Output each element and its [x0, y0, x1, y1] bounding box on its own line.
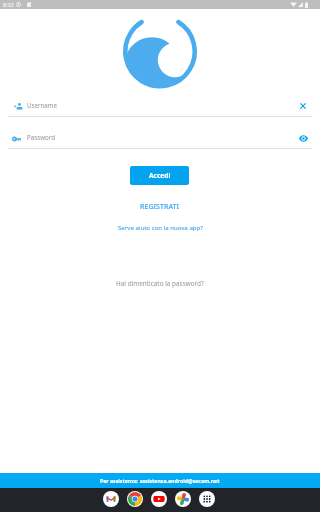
button[interactable]: Show password	[296, 131, 310, 145]
staticText: Per assistenza: assistenza.android@secam…	[100, 477, 220, 484]
button[interactable]: Per assistenza: assistenza.android@secam…	[0, 473, 320, 488]
button[interactable]: Accedi	[130, 166, 189, 185]
button[interactable]: Chrome	[127, 491, 143, 507]
staticText: Accedi	[149, 171, 171, 180]
staticText: REGISTRATI	[140, 201, 180, 211]
button[interactable]: YouTube	[151, 491, 167, 507]
button[interactable]: Clear	[296, 99, 310, 113]
staticText: Hai dimenticato la password?	[116, 279, 204, 288]
staticText: Serve aiuto con la nuova app?	[118, 223, 203, 231]
button[interactable]: Serve aiuto con la nuova app?	[0, 221, 320, 232]
button[interactable]: All apps	[199, 491, 215, 507]
staticText: 8:32	[3, 1, 14, 8]
button[interactable]: REGISTRATI	[0, 200, 320, 211]
staticText: Password	[27, 133, 55, 141]
staticText: Username	[27, 101, 58, 109]
button[interactable]: Photos	[175, 491, 191, 507]
button[interactable]: Hai dimenticato la password?	[0, 278, 320, 289]
button[interactable]: Gmail	[103, 491, 119, 507]
